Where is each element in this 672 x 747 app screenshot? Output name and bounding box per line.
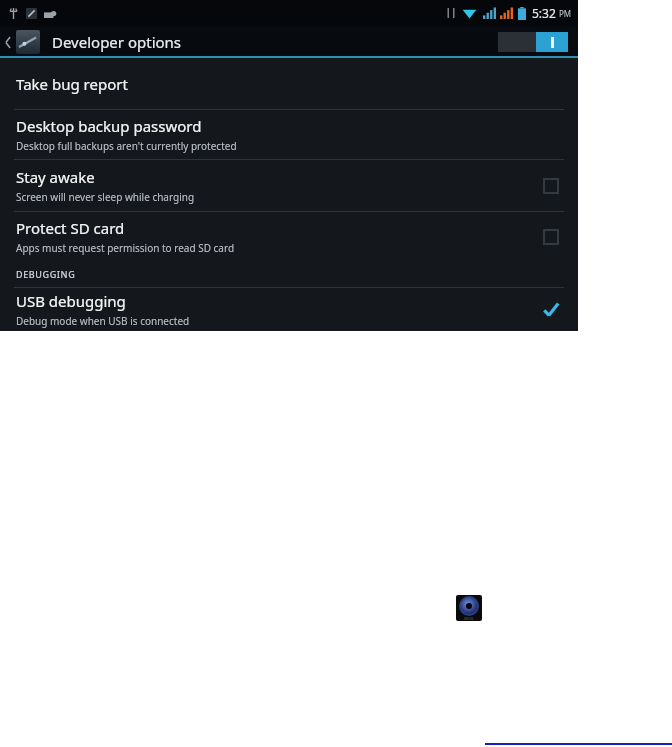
staticText: Developer options (52, 32, 182, 52)
staticText: USB debugging (16, 291, 126, 311)
staticText: 5:32 (532, 5, 556, 21)
button[interactable]: USB debugging checkbox, checked (538, 297, 564, 323)
button[interactable]: Navigate up (0, 26, 16, 58)
button[interactable]: App icon (456, 595, 482, 621)
staticText: Take bug report (16, 74, 128, 94)
button[interactable]: Developer options on/off (498, 32, 568, 52)
staticText: Protect SD card (16, 218, 125, 238)
button[interactable]: Stay awake checkbox (538, 173, 564, 199)
staticText: Stay awake (16, 167, 95, 187)
staticText: Debug mode when USB is connected (16, 314, 190, 328)
staticText: Desktop backup password (16, 116, 202, 136)
button[interactable]: USB debugging (0, 288, 578, 331)
staticText: DEBUGGING (16, 268, 76, 280)
button[interactable]: Take bug report (0, 58, 578, 109)
staticText: MUSIC (464, 617, 474, 621)
button[interactable]: Desktop backup password (0, 110, 578, 159)
staticText: Apps must request permission to read SD … (16, 241, 235, 255)
button[interactable]: Protect SD card checkbox (538, 224, 564, 250)
staticText: Desktop full backups aren't currently pr… (16, 139, 237, 153)
staticText: Screen will never sleep while charging (16, 190, 195, 204)
button[interactable]: Protect SD card (0, 212, 578, 261)
staticText: PM (559, 8, 572, 19)
button[interactable]: Stay awake (0, 160, 578, 211)
